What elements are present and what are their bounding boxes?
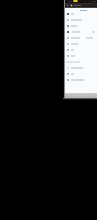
button[interactable] (65, 11, 97, 17)
button[interactable]: Navigate up (65, 3, 97, 8)
button[interactable] (65, 35, 97, 41)
button[interactable] (65, 17, 97, 23)
button[interactable] (65, 77, 97, 83)
button[interactable] (65, 47, 97, 53)
button[interactable] (65, 41, 97, 47)
button[interactable] (65, 29, 97, 35)
button[interactable] (65, 59, 97, 65)
button[interactable] (65, 23, 97, 29)
button[interactable] (65, 65, 97, 71)
button[interactable] (65, 71, 97, 77)
button[interactable] (65, 53, 97, 59)
